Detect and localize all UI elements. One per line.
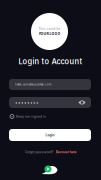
- button[interactable]: Show password: [77, 98, 87, 106]
- staticText: Login to Account: [18, 57, 82, 66]
- staticText: YOUR LOGO: [38, 32, 60, 36]
- button[interactable]: Recover here: [55, 150, 76, 154]
- staticText: ••••••••: [15, 100, 39, 105]
- button[interactable]: ✓: [10, 112, 70, 121]
- staticText: Forgot password?: [24, 150, 53, 154]
- staticText: This could be: [38, 27, 60, 31]
- staticText: name.surname@gmail.com: [15, 83, 51, 86]
- staticText: Login: [45, 133, 54, 137]
- staticText: Recover here: [55, 150, 76, 154]
- staticText: Keep me signed in: [16, 115, 46, 118]
- button[interactable]: Login: [9, 129, 91, 141]
- staticText: ✓: [10, 115, 13, 118]
